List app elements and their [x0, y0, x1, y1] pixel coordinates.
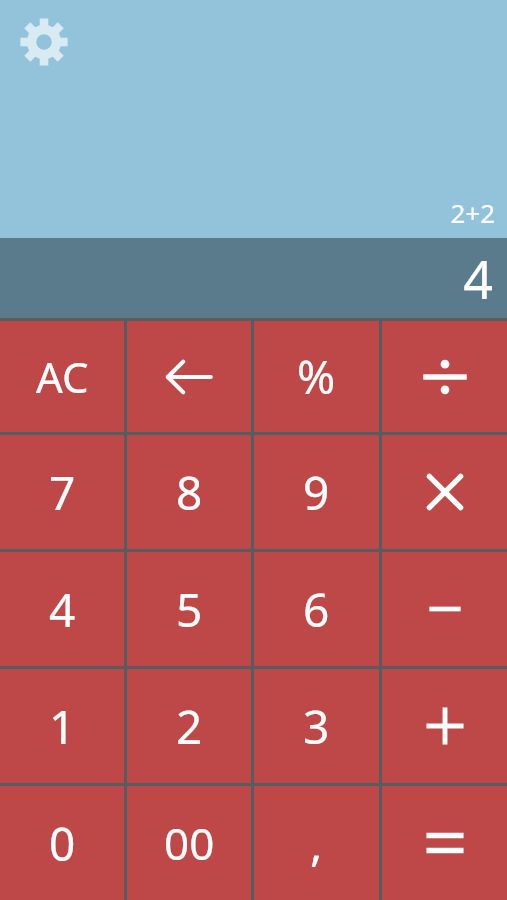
button[interactable]: 8	[127, 435, 251, 549]
button[interactable]: Backspace	[127, 321, 251, 432]
staticText: 4	[463, 243, 493, 314]
button[interactable]: 1	[0, 669, 124, 783]
staticText: 0	[49, 812, 76, 875]
button[interactable]: 6	[254, 552, 379, 666]
button[interactable]: 2	[127, 669, 251, 783]
button[interactable]: ,	[254, 786, 379, 900]
staticText: 3	[303, 695, 330, 758]
button[interactable]: Settings	[16, 14, 72, 70]
staticText: 5	[176, 578, 203, 641]
button[interactable]: 7	[0, 435, 124, 549]
button[interactable]: Divide	[382, 321, 507, 432]
staticText: 8	[176, 461, 203, 524]
staticText: 6	[303, 578, 330, 641]
staticText: ,	[310, 812, 323, 875]
button[interactable]: 9	[254, 435, 379, 549]
staticText: 7	[49, 461, 76, 524]
button[interactable]: Equals	[382, 786, 507, 900]
staticText: 4	[49, 578, 76, 641]
staticText: AC	[36, 348, 89, 405]
staticText: 00	[164, 813, 215, 873]
button[interactable]: Multiply	[382, 435, 507, 549]
button[interactable]: 0	[0, 786, 124, 900]
staticText: 1	[49, 695, 76, 758]
staticText: 2	[176, 695, 203, 758]
button[interactable]: AC	[0, 321, 124, 432]
button[interactable]: Plus	[382, 669, 507, 783]
staticText: 2+2	[450, 195, 495, 230]
staticText: %	[297, 345, 336, 408]
button[interactable]: Minus	[382, 552, 507, 666]
staticText: 9	[303, 461, 330, 524]
button[interactable]: 3	[254, 669, 379, 783]
button[interactable]: 00	[127, 786, 251, 900]
button[interactable]: 5	[127, 552, 251, 666]
button[interactable]: 4	[0, 552, 124, 666]
button[interactable]: %	[254, 321, 379, 432]
